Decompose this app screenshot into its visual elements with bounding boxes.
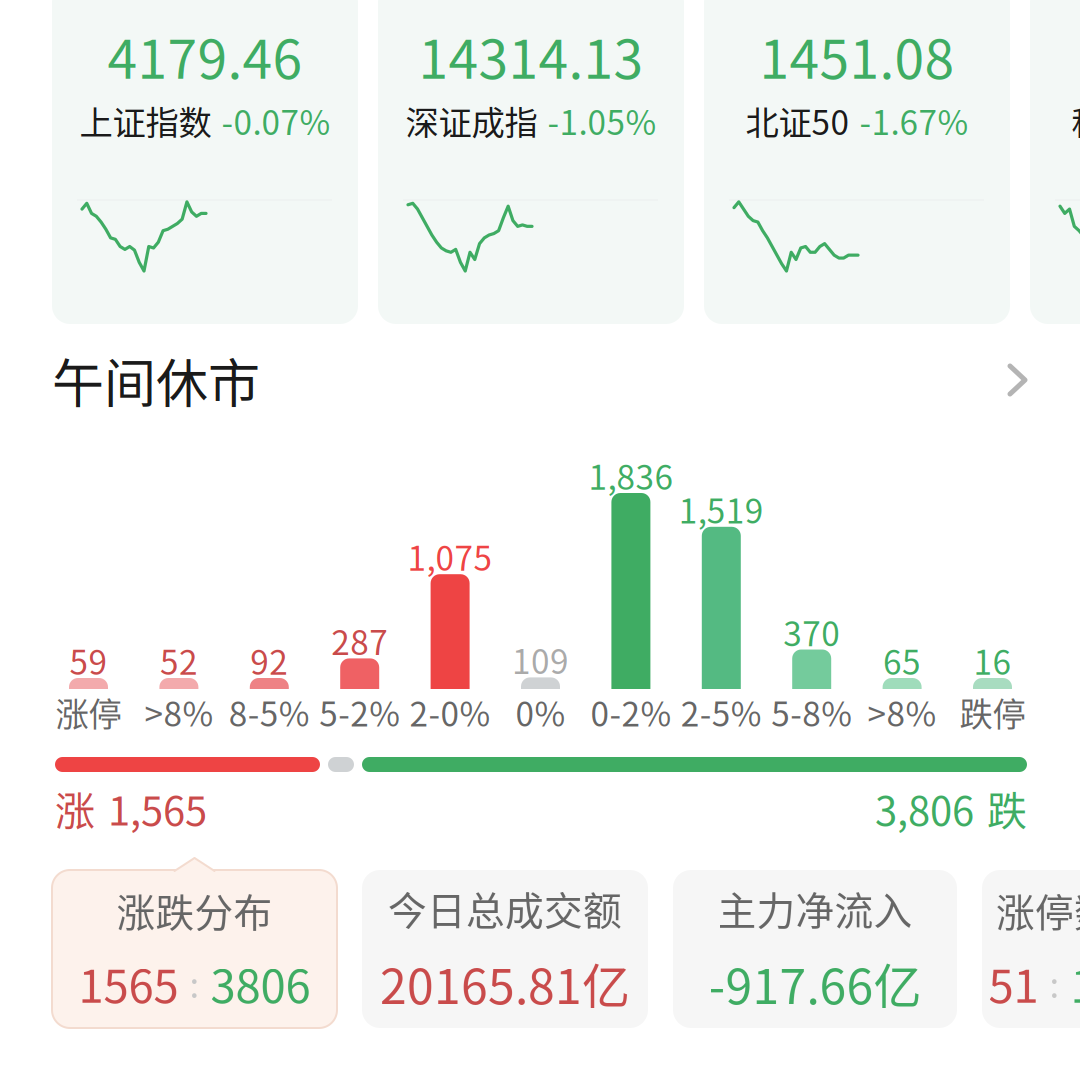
staticText: 1565: [78, 950, 178, 1016]
staticText: 上证指数: [79, 96, 211, 144]
staticText: 0%: [515, 688, 565, 736]
staticText: 59: [69, 636, 107, 684]
staticText: 5-2%: [319, 688, 400, 736]
staticText: 3806: [210, 950, 310, 1016]
staticText: 涨停数: [996, 882, 1080, 938]
button[interactable]: 主力净流入: [673, 870, 957, 1028]
staticText: >8%: [144, 688, 213, 736]
staticText: 涨跌分布: [116, 882, 272, 938]
staticText: 1,075: [408, 532, 493, 580]
staticText: -1.67%: [859, 96, 968, 144]
staticText: 跌停: [959, 688, 1025, 736]
staticText: 109: [512, 635, 569, 684]
button[interactable]: 4179.46: [52, 0, 358, 324]
staticText: 深证成指: [405, 96, 537, 144]
staticText: 20165.81亿: [380, 948, 630, 1018]
staticText: 52: [160, 636, 198, 684]
button[interactable]: 1054.22: [1030, 0, 1080, 324]
staticText: 16: [973, 636, 1011, 684]
staticText: :: [189, 958, 199, 1008]
staticText: 午间休市: [52, 342, 260, 418]
staticText: 北证50: [745, 96, 849, 144]
staticText: >8%: [868, 688, 937, 736]
staticText: 287: [331, 616, 388, 665]
staticText: 3,806: [875, 779, 974, 837]
button[interactable]: 14314.13: [378, 0, 684, 324]
staticText: 4179.46: [107, 17, 302, 94]
staticText: 涨: [55, 779, 95, 837]
staticText: 1,836: [588, 451, 673, 499]
staticText: 51: [988, 950, 1038, 1016]
staticText: 2-5%: [681, 688, 762, 736]
staticText: 65: [883, 636, 921, 684]
staticText: 科创50: [1071, 96, 1080, 144]
button[interactable]: 涨停数: [982, 870, 1080, 1028]
staticText: :: [1049, 958, 1059, 1008]
staticText: 主力净流入: [717, 880, 912, 936]
staticText: 5-8%: [771, 688, 852, 736]
staticText: 14314.13: [418, 17, 643, 94]
staticText: 1,565: [108, 779, 207, 837]
staticText: 370: [783, 607, 840, 656]
staticText: 92: [250, 636, 288, 684]
button[interactable]: 今日总成交额: [362, 870, 648, 1028]
staticText: 1451.08: [759, 17, 954, 94]
staticText: 8-5%: [229, 688, 310, 736]
staticText: -1.05%: [547, 96, 656, 144]
staticText: 跌: [987, 779, 1027, 837]
staticText: 2-0%: [410, 688, 491, 736]
button[interactable]: 涨跌分布: [52, 870, 337, 1028]
button[interactable]: 午间休市: [52, 348, 1028, 412]
staticText: 今日总成交额: [388, 880, 622, 936]
staticText: 涨停: [55, 688, 121, 736]
staticText: 1,519: [679, 485, 764, 533]
staticText: -917.66亿: [708, 948, 921, 1018]
staticText: 16: [1070, 950, 1080, 1016]
button[interactable]: 1451.08: [704, 0, 1010, 324]
staticText: -0.07%: [221, 96, 330, 144]
staticText: 0-2%: [590, 688, 671, 736]
